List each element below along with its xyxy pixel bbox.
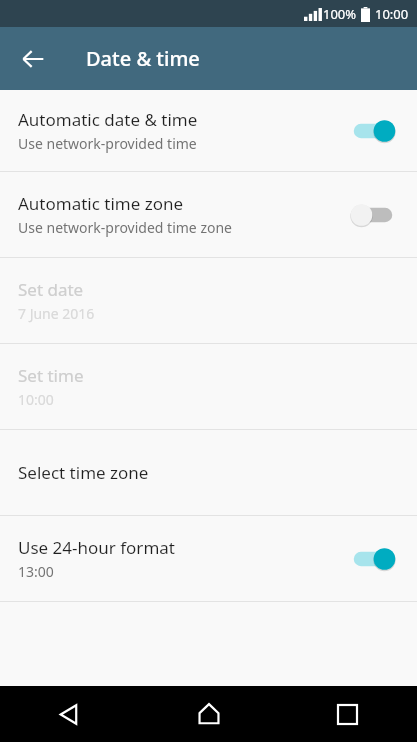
button: Set time — [0, 344, 417, 429]
button[interactable]: Select time zone — [0, 430, 417, 515]
staticText: 7 June 2016 — [18, 304, 95, 323]
staticText: 13:00 — [18, 562, 54, 581]
staticText: Use network-provided time — [18, 134, 197, 153]
button[interactable]: Use 24-hour format — [0, 516, 417, 601]
button[interactable]: Off — [347, 200, 399, 230]
staticText: Automatic time zone — [18, 192, 184, 215]
staticText: Select time zone — [18, 461, 149, 484]
button[interactable]: Back — [11, 37, 55, 81]
staticText: 10:00 — [375, 5, 409, 23]
staticText: Date & time — [86, 45, 200, 72]
staticText: Use network-provided time zone — [18, 218, 232, 237]
button[interactable]: Recents — [278, 686, 417, 742]
button[interactable]: On — [347, 544, 399, 574]
staticText: Use 24-hour format — [18, 536, 175, 559]
staticText: 10:00 — [18, 390, 54, 409]
staticText: 100% — [323, 5, 357, 23]
staticText: Automatic date & time — [18, 108, 198, 131]
button[interactable]: Automatic date & time — [0, 90, 417, 171]
button[interactable]: On — [347, 116, 399, 146]
button[interactable]: Back — [0, 686, 139, 742]
button[interactable]: Automatic time zone — [0, 172, 417, 257]
button: Set date — [0, 258, 417, 343]
staticText: Set time — [18, 364, 84, 387]
staticText: Set date — [18, 278, 84, 301]
button[interactable]: Home — [139, 686, 278, 742]
